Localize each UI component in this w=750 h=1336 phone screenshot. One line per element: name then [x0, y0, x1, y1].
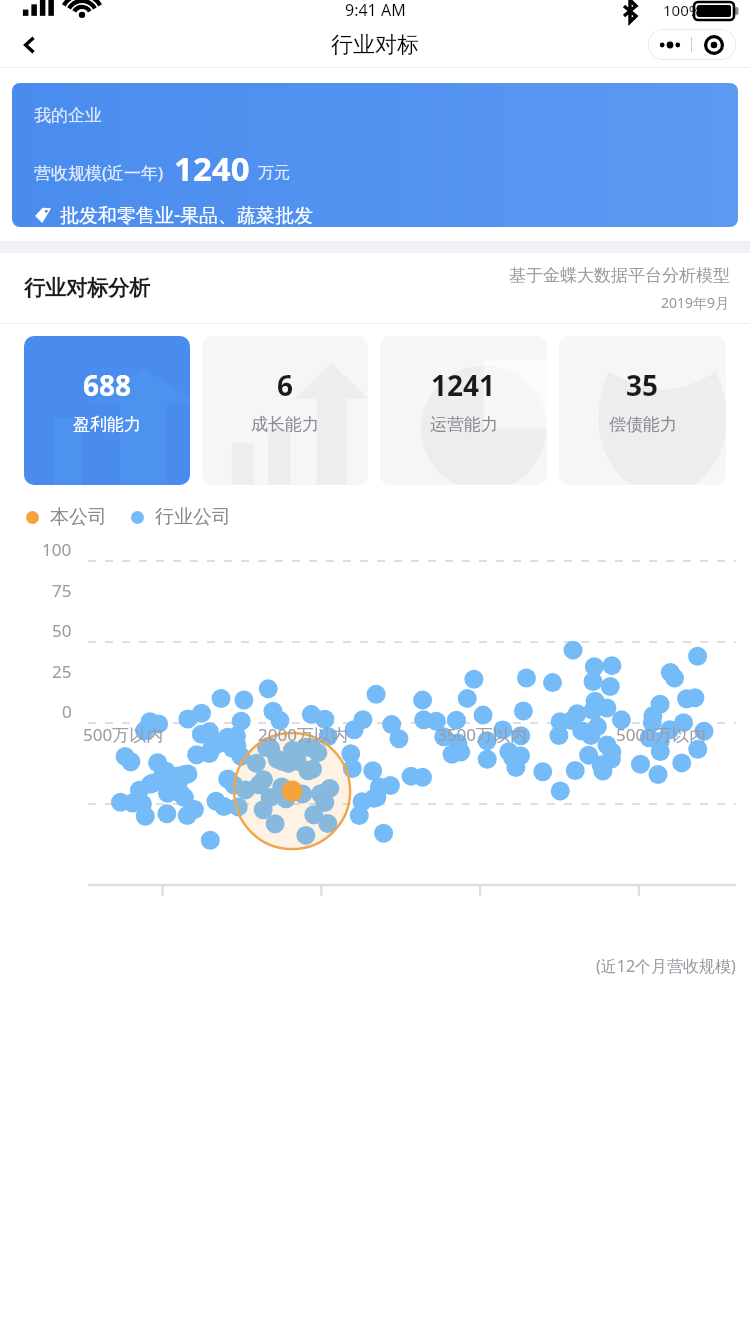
button[interactable]: 我的企业: [12, 83, 738, 227]
staticText: 成长能力: [251, 414, 319, 435]
staticText: 万元: [258, 163, 290, 183]
staticText: 1240: [174, 146, 250, 191]
staticText: 9:41 AM: [345, 0, 406, 21]
staticText: 偿债能力: [609, 414, 677, 435]
staticText: 25: [52, 660, 72, 683]
staticText: 盈利能力: [73, 414, 141, 435]
staticText: 688: [83, 366, 132, 404]
button[interactable]: More: [648, 40, 691, 50]
staticText: 基于金蝶大数据平台分析模型: [509, 265, 730, 286]
staticText: 2019年9月: [661, 293, 730, 312]
staticText: 35: [626, 366, 659, 404]
button[interactable]: 1241: [380, 336, 547, 485]
staticText: 1241: [431, 366, 496, 404]
staticText: 500万以内: [83, 723, 164, 746]
button[interactable]: Back: [8, 23, 52, 67]
staticText: 75: [52, 579, 72, 602]
staticText: 本公司: [50, 505, 107, 529]
staticText: (近12个月营收规模): [596, 955, 736, 977]
button[interactable]: 35: [559, 336, 726, 485]
staticText: 行业对标: [331, 31, 419, 59]
staticText: 2000万以内: [258, 723, 348, 746]
button[interactable]: Menu: [692, 35, 736, 55]
staticText: 营收规模(近一年): [34, 161, 164, 184]
staticText: 运营能力: [430, 414, 498, 435]
staticText: 3500万以内: [437, 723, 527, 746]
staticText: 50: [52, 619, 72, 642]
staticText: 6: [277, 366, 294, 404]
staticText: 100: [42, 538, 72, 561]
staticText: 我的企业: [34, 105, 102, 126]
staticText: 5000万以内: [616, 723, 706, 746]
button[interactable]: 688: [24, 336, 190, 485]
staticText: 0: [62, 700, 72, 723]
staticText: 100%: [663, 0, 702, 20]
staticText: 行业对标分析: [24, 275, 150, 301]
staticText: 行业公司: [155, 505, 231, 529]
button[interactable]: 6: [202, 336, 368, 485]
staticText: 批发和零售业-果品、蔬菜批发: [60, 202, 314, 227]
